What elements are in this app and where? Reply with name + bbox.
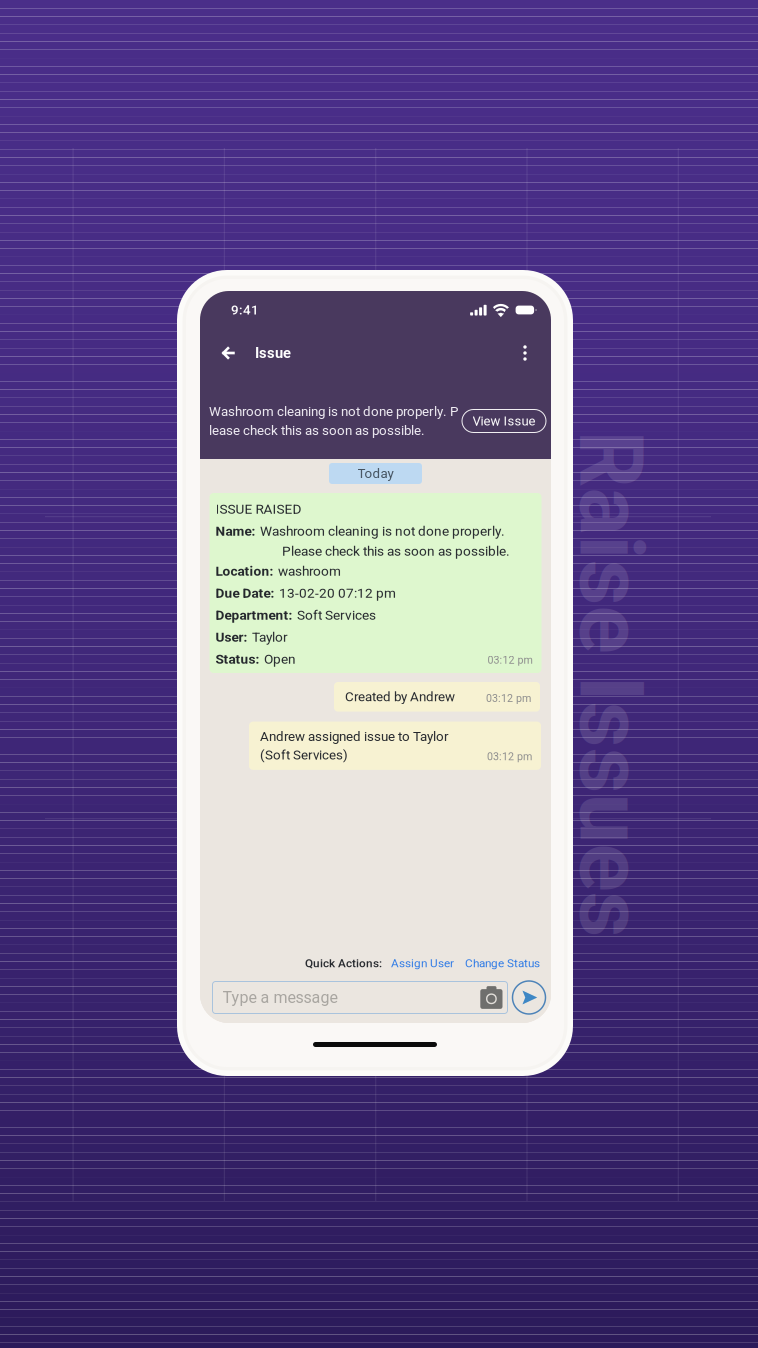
staticText: Created by Andrew (345, 689, 455, 705)
staticText: Taylor (252, 629, 288, 645)
staticText: Raise Issues (357, 632, 758, 736)
staticText: Today (357, 466, 393, 481)
staticText: (Soft Services) (260, 747, 348, 763)
button[interactable]: More options (510, 336, 540, 370)
staticText: 13-02-20 07:12 pm (279, 585, 396, 601)
staticText: Please check this as soon as possible. (282, 543, 510, 559)
staticText: ISSUE RAISED (215, 501, 301, 517)
button[interactable]: Back (211, 336, 245, 370)
button[interactable]: Send (511, 980, 546, 1015)
staticText: Location: (215, 563, 273, 579)
staticText: 03:12 pm (487, 750, 532, 763)
staticText: Status: (215, 651, 259, 667)
staticText: View Issue (472, 413, 535, 429)
staticText: Change Status (465, 956, 540, 970)
button[interactable]: View Issue (462, 409, 546, 432)
button[interactable]: Assign User (391, 956, 454, 970)
staticText: Department: (215, 607, 292, 623)
staticText: Assign User (391, 956, 454, 970)
staticText: Open (264, 651, 296, 667)
staticText: Quick Actions: (305, 956, 382, 970)
staticText: Name: (215, 523, 255, 539)
staticText: 9:41 (231, 302, 259, 318)
staticText: 03:12 pm (486, 692, 531, 705)
staticText: Washroom cleaning is not done properly. … (209, 404, 458, 419)
staticText: Due Date: (215, 585, 274, 601)
staticText: Andrew assigned issue to Taylor (260, 729, 449, 744)
staticText: Washroom cleaning is not done properly. (260, 523, 505, 539)
button[interactable]: Change Status (465, 956, 540, 970)
staticText: Soft Services (297, 607, 376, 623)
staticText: 03:12 pm (487, 654, 532, 666)
staticText: User: (215, 629, 247, 645)
staticText: Issue (255, 344, 291, 362)
staticText: washroom (278, 563, 341, 579)
staticText: Type a message (222, 988, 337, 1007)
button[interactable]: Attach photo (480, 986, 502, 1009)
staticText: lease check this as soon as possible. (209, 423, 425, 438)
